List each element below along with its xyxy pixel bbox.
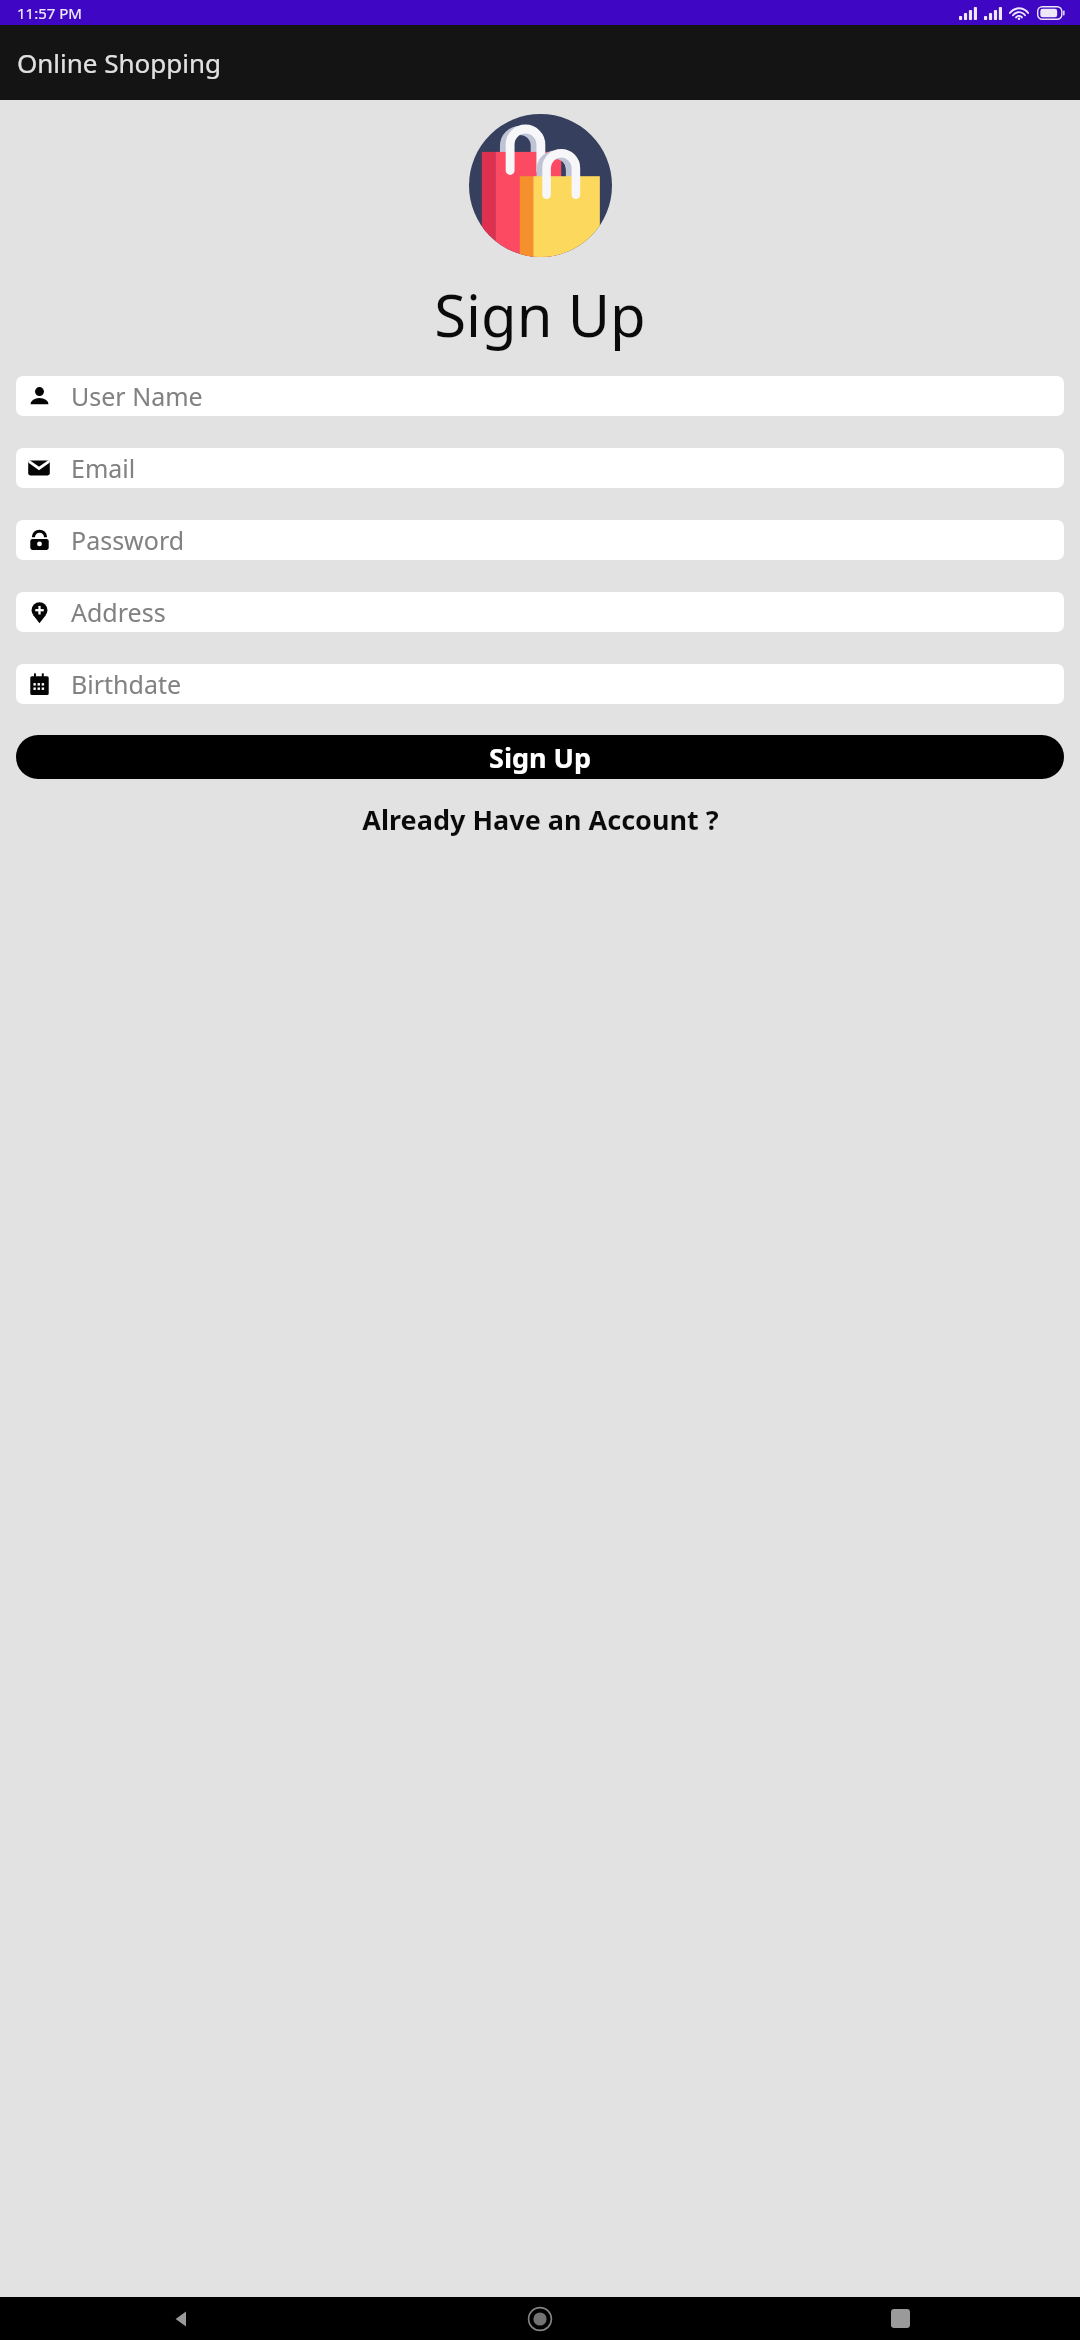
button[interactable]: Recents — [720, 2297, 1080, 2340]
staticText: Password — [71, 523, 185, 557]
button[interactable]: Sign Up — [16, 735, 1064, 779]
button[interactable]: Back — [0, 2297, 360, 2340]
staticText: User Name — [71, 379, 203, 413]
staticText: 11:57 PM — [17, 3, 82, 23]
staticText: Sign Up — [434, 275, 646, 354]
button[interactable]: Already Have an Account ? — [0, 801, 1080, 838]
staticText: Online Shopping — [17, 45, 222, 80]
staticText: Already Have an Account ? — [362, 801, 719, 838]
button[interactable]: Home — [360, 2297, 720, 2340]
staticText: Sign Up — [489, 739, 592, 776]
staticText: Address — [71, 595, 166, 629]
button[interactable]: Address — [16, 592, 1064, 632]
button[interactable]: User Name — [16, 376, 1064, 416]
staticText: Email — [71, 451, 136, 485]
button[interactable]: Password — [16, 520, 1064, 560]
staticText: Birthdate — [71, 667, 182, 701]
button[interactable]: Email — [16, 448, 1064, 488]
button[interactable]: Birthdate — [16, 664, 1064, 704]
